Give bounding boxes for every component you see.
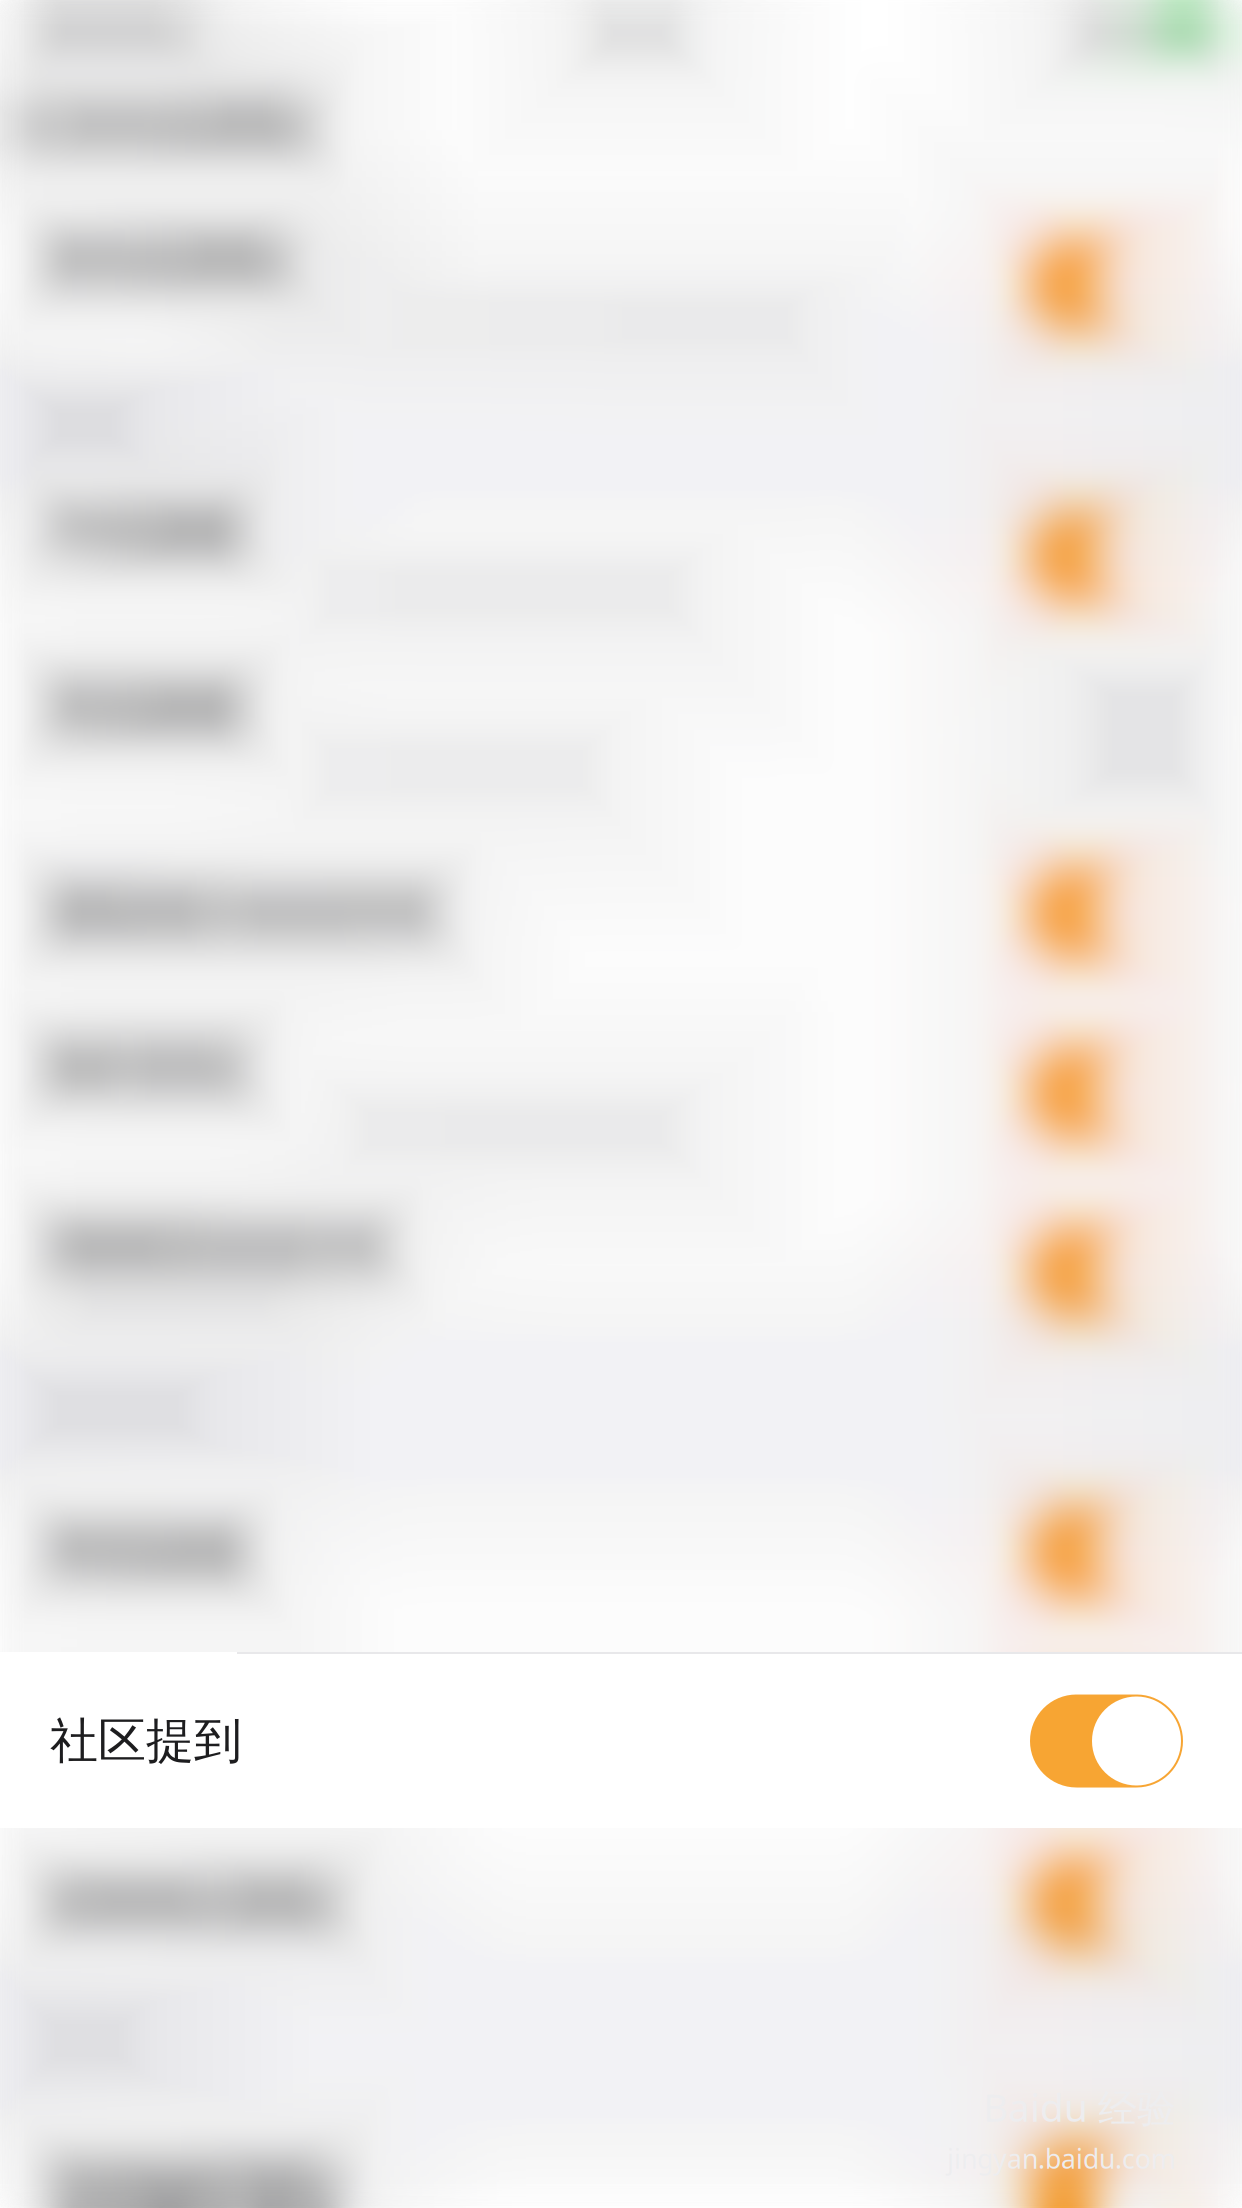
button[interactable]: 赞和收藏 [0, 1458, 1242, 1646]
button[interactable]: 社区提到 [0, 1646, 1242, 1822]
button[interactable]: 新增粉丝通知 [0, 1822, 1242, 1983]
staticText: 震动提醒 [50, 679, 242, 738]
button[interactable]: Switch on [1030, 509, 1183, 602]
staticText: 系统服务通知 [50, 2156, 338, 2208]
button[interactable]: 系统服务通知 [0, 2098, 1242, 2208]
button[interactable]: 新消息通知 [0, 62, 342, 190]
button[interactable]: 震动提醒 [0, 642, 1242, 822]
staticText: 社区提到 [50, 1705, 242, 1764]
staticText: 声音提醒 [50, 502, 242, 561]
button[interactable]: 聊天置顶 [0, 1002, 1242, 1182]
button[interactable]: 声音提醒 [0, 470, 1242, 642]
staticText: Baidu 经验 [983, 2081, 1176, 2132]
button[interactable]: 社区提到 [0, 1652, 1242, 1828]
staticText: 社区提到 [50, 1711, 242, 1770]
staticText: 赞和收藏 [50, 1522, 242, 1581]
staticText: 仅显示数字 [100, 1290, 255, 1327]
button[interactable]: 新消息通知 [0, 190, 1242, 380]
staticText: 100% [1078, 12, 1149, 50]
staticText: jingyan.baidu.com [947, 2141, 1176, 2176]
button[interactable]: 群聊消息免打扰 [0, 1182, 1242, 1362]
staticText: 通知显示消息详情 [50, 883, 434, 942]
staticText: 新消息通知 [72, 96, 312, 155]
staticText: 群聊消息免打扰 [50, 1219, 386, 1278]
staticText: 聊天置顶 [50, 1039, 242, 1098]
button[interactable]: Switch on [1030, 1694, 1183, 1787]
staticText: 新增粉丝通知 [50, 1874, 338, 1933]
button[interactable]: Switch on [1030, 1046, 1183, 1139]
button[interactable]: Switch on [1030, 1226, 1183, 1319]
button[interactable]: 通知显示消息详情 [0, 822, 1242, 1002]
button[interactable]: Switch on [1030, 1688, 1183, 1781]
button[interactable]: Switch on [1030, 238, 1183, 331]
button[interactable]: Switch on [1030, 1857, 1183, 1950]
button[interactable]: Switch on [1030, 1505, 1183, 1598]
button[interactable]: Switch off [1030, 686, 1183, 779]
button[interactable]: Switch on [1030, 866, 1183, 959]
button[interactable]: Switch on [1030, 2139, 1183, 2208]
staticText: 新消息通知 [50, 231, 290, 290]
staticText: 中国联通 4G [34, 11, 196, 50]
